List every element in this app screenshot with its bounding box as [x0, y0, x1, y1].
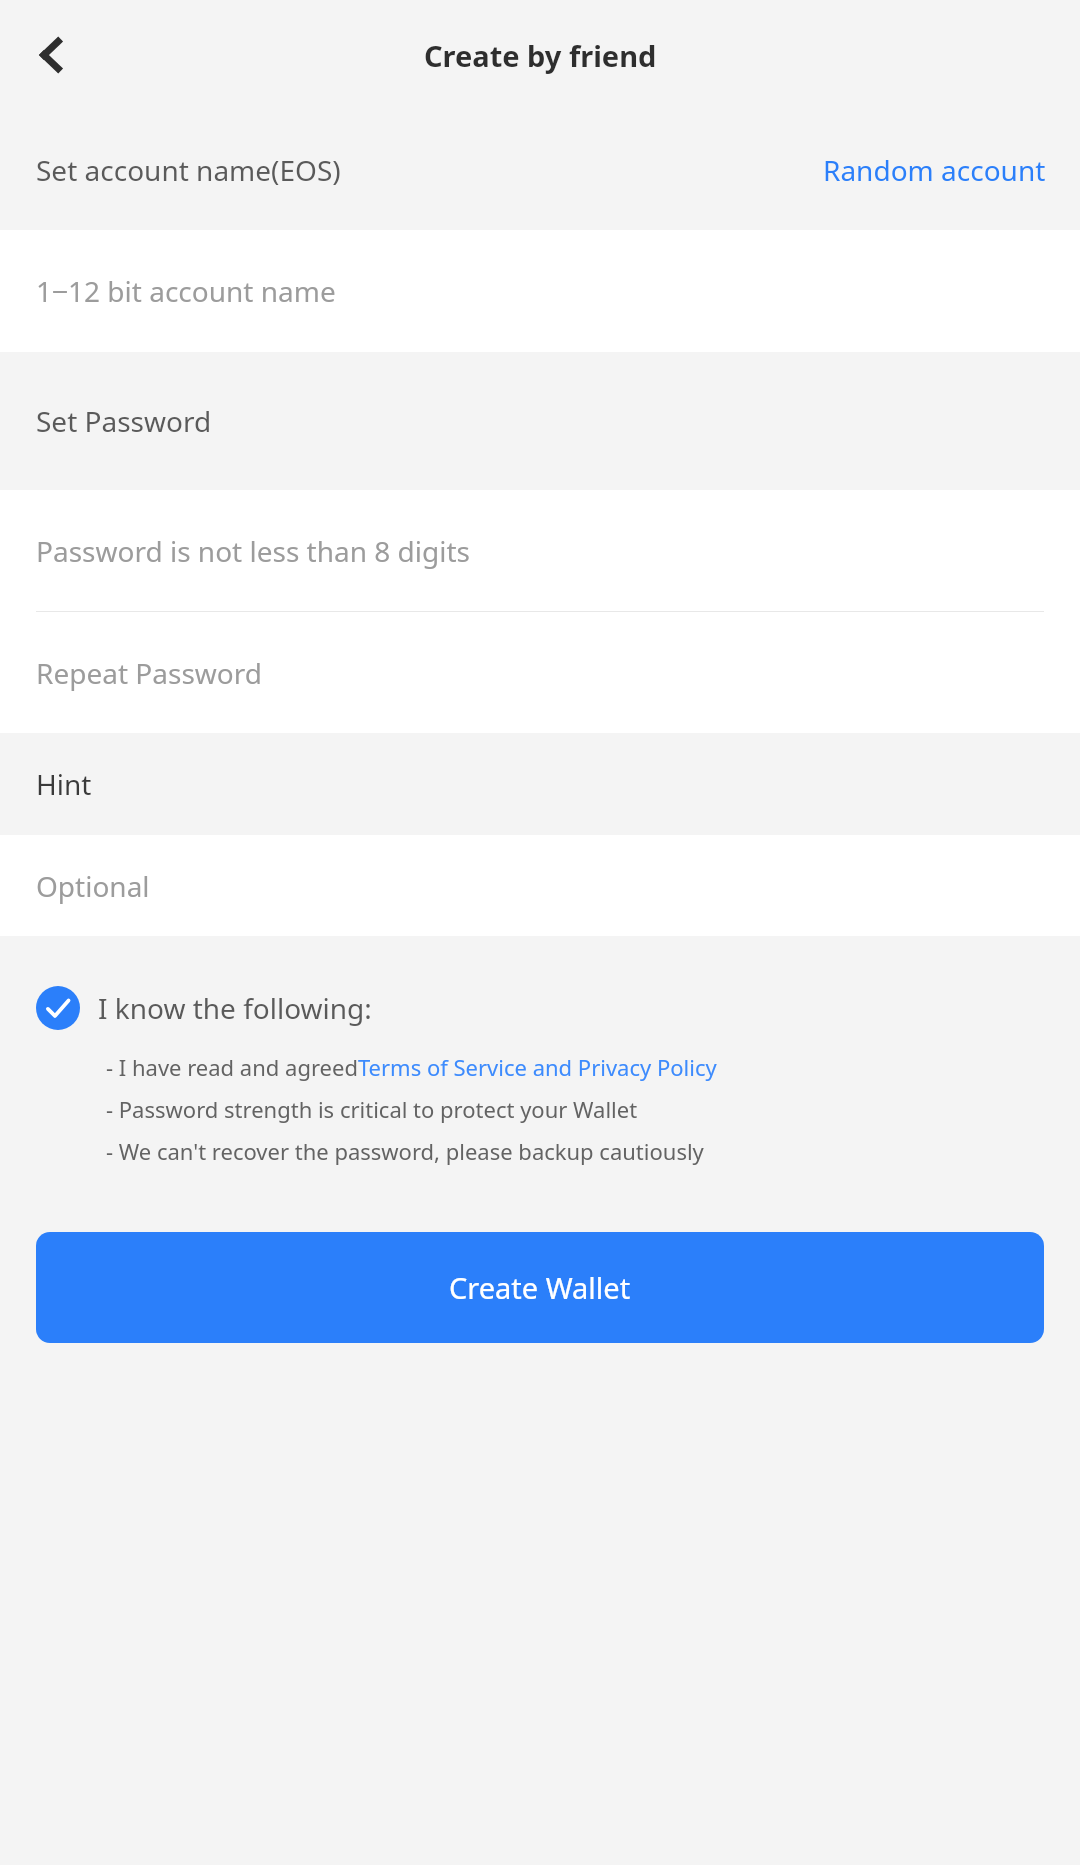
button[interactable]: Random account [813, 143, 1056, 197]
button[interactable]: I know the following: [36, 986, 1080, 1030]
staticText: Create by friend [424, 36, 657, 75]
button[interactable]: Repeat Password [0, 612, 1080, 733]
staticText: Set Password [36, 402, 212, 440]
staticText: Password is not less than 8 digits [36, 532, 471, 570]
staticText: - Password strength is critical to prote… [106, 1094, 638, 1124]
staticText: Optional [36, 867, 150, 905]
staticText: Hint [36, 765, 92, 803]
button[interactable]: Optional [0, 835, 1080, 936]
staticText: Create Wallet [449, 1268, 631, 1307]
staticText: - I have read and agreedTerms of Service… [106, 1052, 717, 1082]
staticText: Repeat Password [36, 654, 262, 692]
staticText: Set account name(EOS) [36, 151, 341, 189]
staticText: - We can't recover the password, please … [106, 1136, 704, 1166]
staticText: Random account [823, 151, 1046, 189]
staticText: I know the following: [98, 989, 372, 1027]
button[interactable]: 1‒12 bit account name [0, 230, 1080, 352]
button[interactable]: Password is not less than 8 digits [0, 490, 1080, 611]
button[interactable]: Back [14, 17, 90, 93]
staticText: 1‒12 bit account name [36, 272, 336, 310]
button[interactable]: Create Wallet [36, 1232, 1044, 1343]
